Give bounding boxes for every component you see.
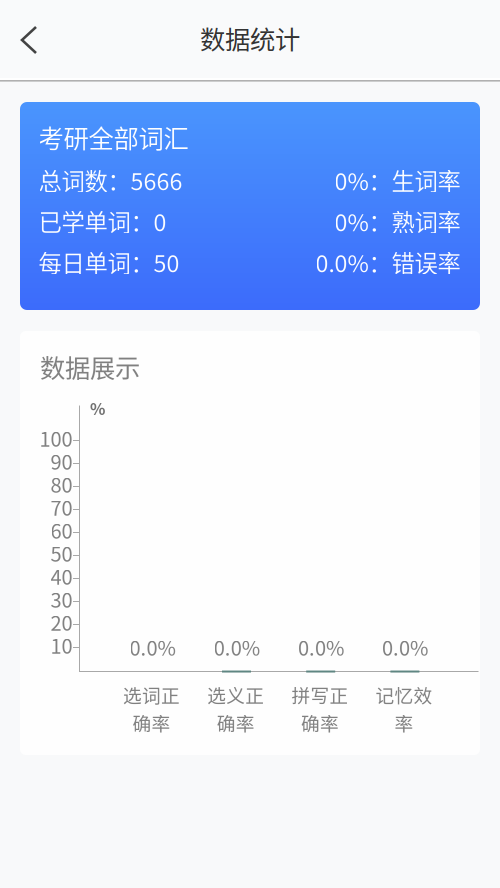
staticText: 0.0% bbox=[382, 632, 428, 661]
staticText: 0%：生词率 bbox=[334, 163, 460, 197]
staticText: 90 bbox=[50, 446, 72, 475]
staticText: 100 bbox=[39, 423, 72, 452]
staticText: 拼写正 bbox=[291, 681, 348, 708]
staticText: 70 bbox=[50, 492, 72, 521]
staticText: 80 bbox=[50, 469, 72, 498]
staticText: 总词数：5666 bbox=[38, 163, 182, 197]
staticText: 选义正 bbox=[207, 681, 264, 708]
staticText: 10 bbox=[50, 630, 72, 659]
staticText: 0.0%：错误率 bbox=[315, 245, 460, 279]
staticText: 率 bbox=[395, 709, 414, 736]
staticText: 0.0% bbox=[129, 632, 175, 661]
staticText: 60 bbox=[50, 515, 72, 544]
staticText: 0.0% bbox=[298, 632, 344, 661]
staticText: 数据统计 bbox=[200, 20, 300, 56]
staticText: 确率 bbox=[217, 709, 255, 736]
staticText: 已学单词：0 bbox=[38, 204, 166, 238]
staticText: 40 bbox=[50, 561, 72, 590]
staticText: 选词正 bbox=[123, 681, 180, 708]
staticText: 记忆效 bbox=[376, 681, 433, 708]
button[interactable]: Back bbox=[5, 16, 53, 64]
staticText: 0%：熟词率 bbox=[334, 204, 460, 238]
staticText: 确率 bbox=[132, 709, 170, 736]
staticText: 数据展示 bbox=[40, 348, 140, 385]
staticText: 考研全部词汇 bbox=[38, 119, 188, 155]
staticText: 每日单词：50 bbox=[38, 245, 179, 279]
staticText: 20 bbox=[50, 607, 72, 636]
staticText: 确率 bbox=[301, 709, 339, 736]
staticText: % bbox=[90, 396, 105, 420]
staticText: 0.0% bbox=[214, 632, 260, 661]
staticText: 30 bbox=[50, 584, 72, 613]
staticText: 50 bbox=[50, 538, 72, 567]
